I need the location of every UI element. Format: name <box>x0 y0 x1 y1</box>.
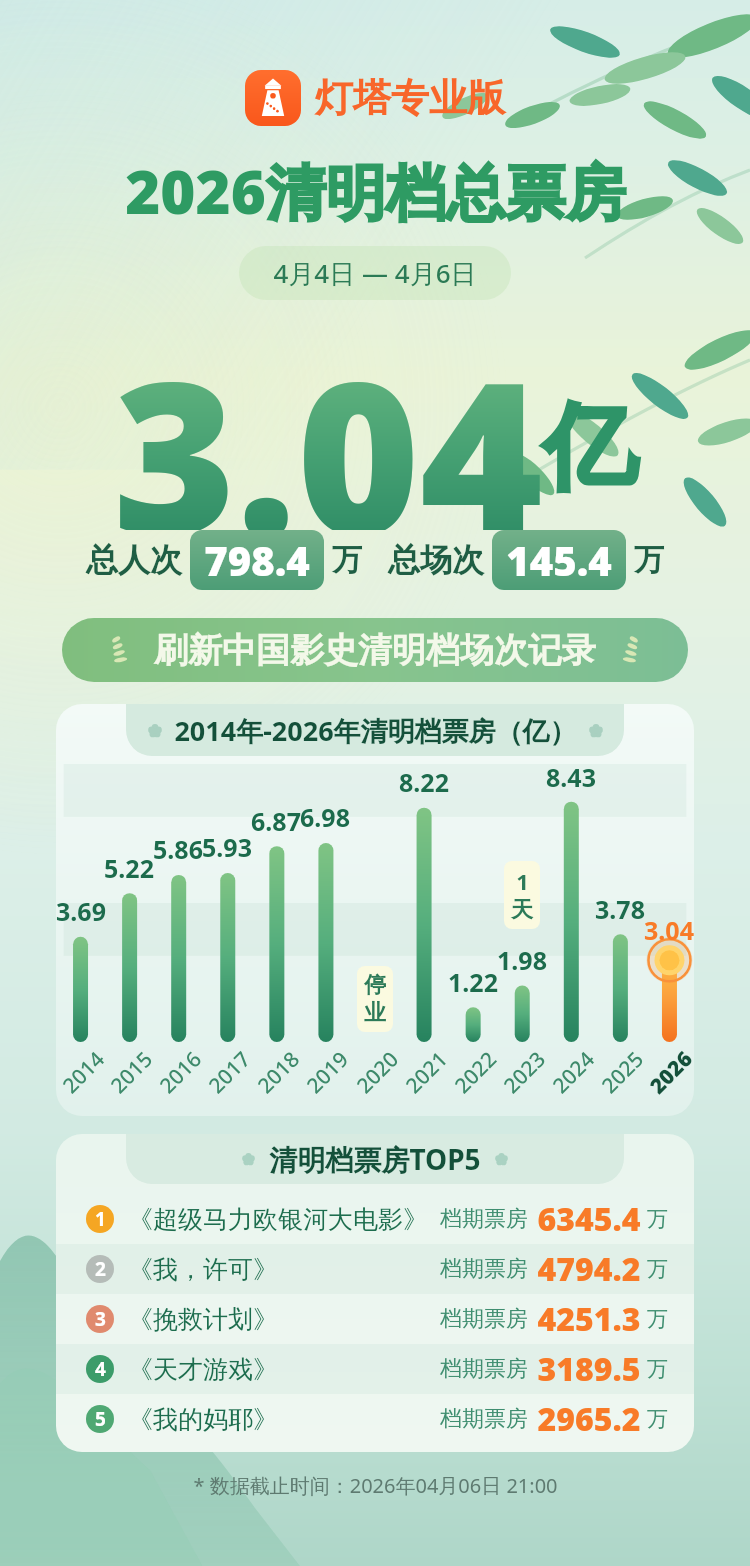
button[interactable]: 总人次 <box>86 530 362 590</box>
staticText: 2014年-2026年清明档票房（亿） <box>174 712 577 749</box>
staticText: 档期票房 <box>440 1205 528 1233</box>
staticText: 2024 <box>546 1045 601 1100</box>
button[interactable]: 1 <box>56 1194 694 1244</box>
staticText: 《我，许可》 <box>128 1254 278 1285</box>
button[interactable]: 2014年-2026年清明档票房（亿） <box>56 704 694 1116</box>
staticText: 《我的妈耶》 <box>128 1404 278 1435</box>
staticText: 万 <box>332 541 362 579</box>
staticText: 4251.3 <box>537 1297 641 1341</box>
staticText: 2021 <box>399 1045 454 1100</box>
staticText: 1.98 <box>497 943 547 977</box>
staticText: 2965.2 <box>537 1397 641 1441</box>
staticText: 4月4日 — 4月6日 <box>273 255 477 291</box>
staticText: 2015 <box>104 1045 159 1100</box>
button[interactable]: 3 <box>56 1294 694 1344</box>
staticText: 3.78 <box>595 892 645 926</box>
staticText: 2026 <box>643 1045 694 1100</box>
staticText: 798.4 <box>204 533 310 587</box>
staticText: 5.93 <box>202 830 252 864</box>
staticText: 4794.2 <box>537 1247 641 1291</box>
button[interactable]: 2 <box>56 1244 694 1294</box>
staticText: 2018 <box>251 1045 306 1100</box>
staticText: 145.4 <box>506 533 612 587</box>
staticText: 2026清明档总票房 <box>125 150 626 232</box>
staticText: 2019 <box>300 1045 355 1100</box>
staticText: 灯塔专业版 <box>315 74 505 122</box>
staticText: 6345.4 <box>537 1197 641 1241</box>
staticText: 2020 <box>350 1045 405 1100</box>
staticText: 2025 <box>595 1045 650 1100</box>
staticText: 天 <box>511 896 533 924</box>
staticText: 《天才游戏》 <box>128 1354 278 1385</box>
staticText: 2 <box>95 1256 106 1282</box>
staticText: 档期票房 <box>440 1305 528 1333</box>
staticText: 《挽救计划》 <box>128 1304 278 1335</box>
staticText: 1 <box>516 866 529 896</box>
other: 灯塔专业版 <box>245 70 301 126</box>
staticText: 5.22 <box>104 851 154 885</box>
staticText: 5.86 <box>153 832 203 866</box>
staticText: 万 <box>647 1406 668 1432</box>
button[interactable]: 灯塔专业版 <box>239 70 511 126</box>
button[interactable]: 总场次 <box>388 530 664 590</box>
staticText: 《超级马力欧银河大电影》 <box>128 1204 428 1235</box>
staticText: 万 <box>647 1306 668 1332</box>
staticText: 万 <box>647 1206 668 1232</box>
staticText: 清明档票房TOP5 <box>269 1140 481 1178</box>
staticText: 2014 <box>56 1045 111 1100</box>
staticText: 3.04 <box>644 913 694 947</box>
staticText: 2016 <box>153 1045 208 1100</box>
staticText: 档期票房 <box>440 1355 528 1383</box>
button[interactable]: 4 <box>56 1344 694 1394</box>
staticText: 4 <box>95 1356 106 1382</box>
staticText: 万 <box>634 541 664 579</box>
staticText: 刷新中国影史清明档场次记录 <box>154 629 596 672</box>
button[interactable]: 刷新中国影史清明档场次记录 <box>62 618 688 682</box>
staticText: 业 <box>364 999 386 1027</box>
staticText: 万 <box>647 1356 668 1382</box>
staticText: 停 <box>364 971 386 999</box>
staticText: 2022 <box>448 1045 503 1100</box>
staticText: 3.04 <box>113 310 543 530</box>
staticText: 总场次 <box>388 540 484 580</box>
staticText: 6.98 <box>300 800 350 834</box>
staticText: * 数据截止时间：2026年04月06日 21:00 <box>193 1472 558 1499</box>
staticText: 档期票房 <box>440 1255 528 1283</box>
staticText: 3 <box>95 1306 106 1332</box>
staticText: 总人次 <box>86 540 182 580</box>
staticText: 万 <box>647 1256 668 1282</box>
staticText: 6.87 <box>251 804 301 838</box>
staticText: 档期票房 <box>440 1405 528 1433</box>
staticText: 3.69 <box>56 894 106 928</box>
staticText: 8.43 <box>546 760 596 794</box>
button[interactable]: 5 <box>56 1394 694 1444</box>
staticText: 3189.5 <box>537 1347 641 1391</box>
staticText: 2017 <box>202 1045 257 1100</box>
staticText: 1 <box>95 1206 106 1232</box>
staticText: 亿 <box>543 388 637 506</box>
staticText: 2023 <box>497 1045 552 1100</box>
staticText: 5 <box>95 1406 106 1432</box>
staticText: 1.22 <box>448 965 498 999</box>
button[interactable]: 4月4日 — 4月6日 <box>239 246 511 300</box>
staticText: 8.22 <box>399 765 449 799</box>
